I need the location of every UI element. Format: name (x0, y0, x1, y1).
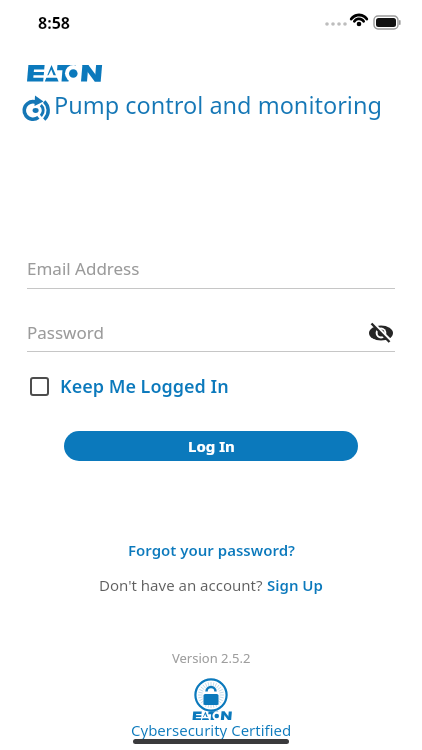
staticText: 8:58 (38, 12, 70, 34)
staticText: Don't have an account? (99, 575, 267, 595)
staticText: Log In (188, 436, 235, 456)
button[interactable]: Email Address (27, 250, 395, 287)
staticText: Pump control and monitoring (54, 89, 382, 121)
button[interactable]: Forgot your password? (128, 540, 295, 560)
button[interactable]: Sign Up (267, 575, 323, 595)
staticText: Version 2.5.2 (172, 649, 251, 667)
staticText: Forgot your password? (128, 540, 295, 560)
staticText: Email Address (27, 257, 140, 280)
button[interactable]: Password (27, 314, 395, 350)
staticText: Password (27, 321, 104, 344)
staticText: Keep Me Logged In (60, 374, 229, 399)
button[interactable]: Keep Me Logged In (30, 373, 229, 399)
staticText: Cybersecurity Certified (131, 720, 292, 740)
button[interactable]: Log In (64, 431, 358, 461)
staticText: Sign Up (267, 575, 323, 595)
button[interactable] (366, 320, 396, 346)
